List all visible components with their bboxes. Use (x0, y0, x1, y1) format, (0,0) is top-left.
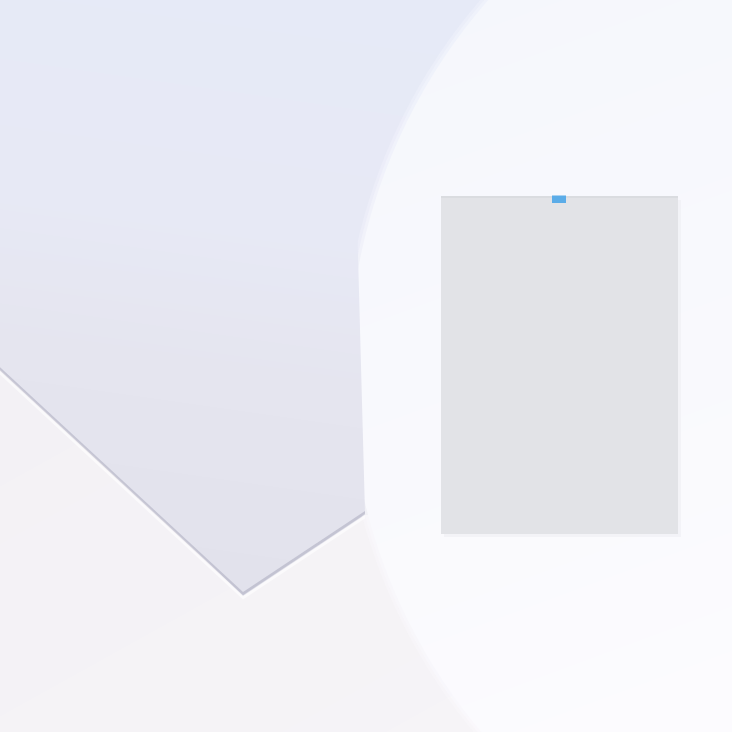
button[interactable]: Document (0, 0, 732, 732)
